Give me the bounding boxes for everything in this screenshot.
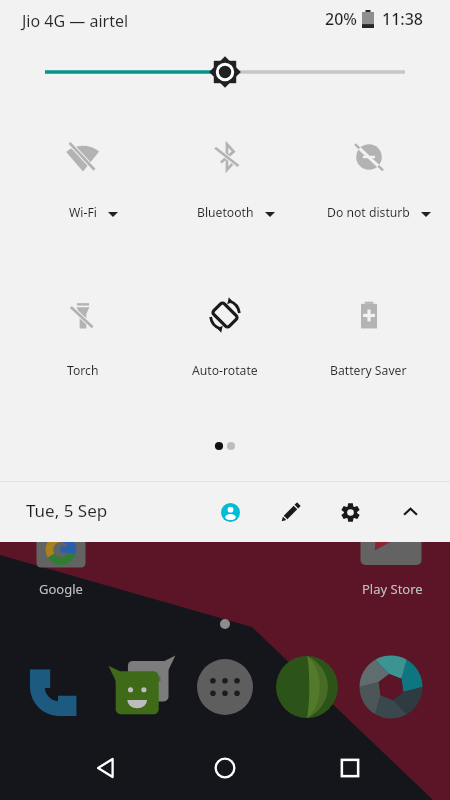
button[interactable]: Auto-rotate: [163, 286, 287, 378]
button[interactable]: Settings: [328, 490, 372, 534]
button[interactable]: Wi-Fi: [21, 128, 145, 220]
button[interactable]: Torch: [21, 286, 145, 378]
staticText: Tue, 5 Sep: [26, 499, 108, 522]
button[interactable]: Bluetooth: [163, 128, 287, 220]
button[interactable]: Do not disturb: [306, 128, 430, 220]
button[interactable]: Collapse: [388, 490, 432, 534]
button[interactable]: Battery Saver: [306, 286, 430, 378]
staticText: Jio 4G — airtel: [22, 10, 129, 32]
staticText: Do not disturb: [327, 204, 410, 220]
staticText: Battery Saver: [330, 362, 407, 378]
staticText: Bluetooth: [197, 204, 254, 220]
button[interactable]: Edit: [268, 490, 312, 534]
button[interactable]: [0, 0, 450, 100]
staticText: Wi-Fi: [69, 204, 97, 220]
button[interactable]: User: [208, 490, 252, 534]
staticText: Play Store: [362, 580, 423, 598]
button[interactable]: Back: [82, 744, 130, 792]
button[interactable]: Home: [201, 744, 249, 792]
staticText: Torch: [67, 362, 99, 378]
staticText: 20%: [325, 8, 357, 30]
staticText: Auto-rotate: [192, 362, 258, 378]
staticText: Google: [39, 580, 83, 598]
button[interactable]: Recents: [326, 744, 374, 792]
staticText: 11:38: [382, 8, 423, 30]
